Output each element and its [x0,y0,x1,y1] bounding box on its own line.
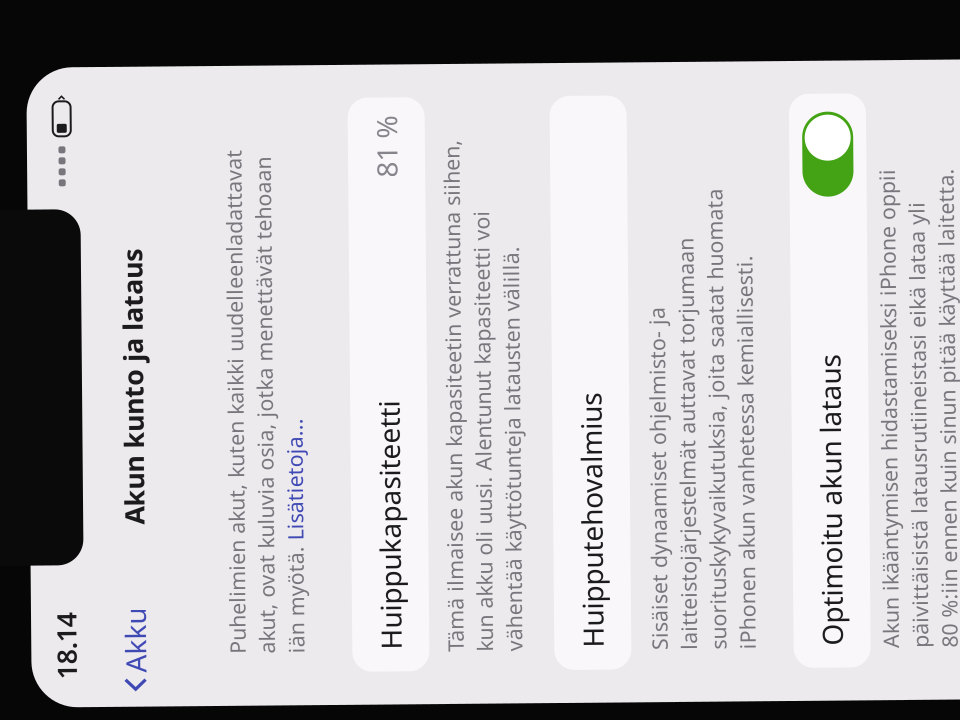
staticText: suorituskykyvaikutuksia, joita saatat hu… [291,526,752,554]
staticText: Sisäiset dynaamiset ohjelmisto- ja [291,467,634,495]
button[interactable]: Optimoitu akun lataus [272,615,846,692]
staticText: Huippukapasiteetti [294,194,543,231]
staticText: Puhelimien akut, kuten kaikki uudelleenl… [291,45,795,73]
staticText: Optimoitu akun lataus [294,635,585,672]
staticText: iän myötä. [291,104,398,132]
staticText: Tämä ilmaisee akun kapasiteetin verrattu… [291,263,803,291]
staticText: Lisätietoja... [404,104,526,132]
staticText: Huipputehovalmius [294,396,549,433]
staticText: 81 % [766,194,828,231]
staticText: Akun ikääntymisen hidastamiseksi iPhone … [291,698,770,720]
staticText: laitteistojärjestelmät auttavat torjumaa… [291,496,703,525]
staticText: vähentää käyttötunteja latausten välillä… [291,322,696,350]
button[interactable]: Huippukapasiteetti [272,174,846,251]
staticText: iPhonen akun vanhetessa kemiallisesti. [291,555,685,583]
button[interactable]: Huipputehovalmius [272,376,846,453]
staticText: kun akku oli uusi. Alentunut kapasiteett… [291,292,732,321]
button[interactable]: Lisätietoja... [404,104,526,132]
